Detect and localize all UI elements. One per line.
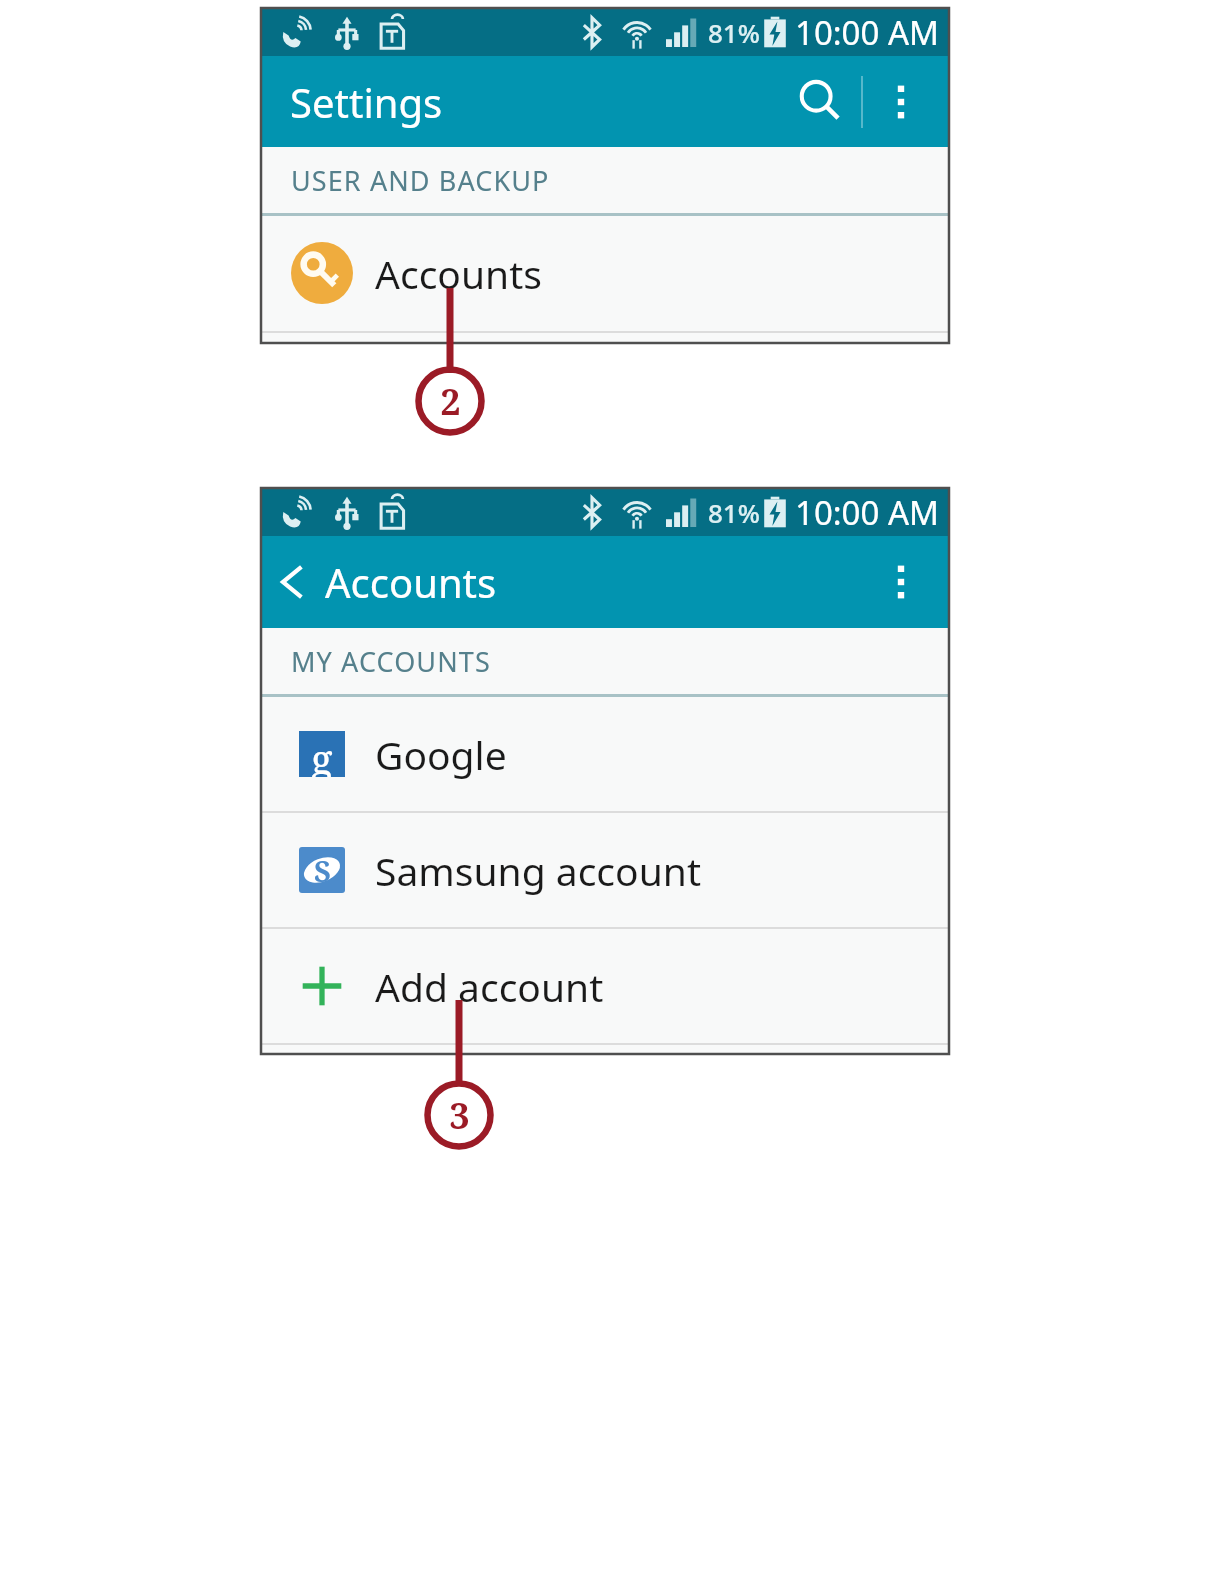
staticText: Google	[375, 728, 507, 781]
staticText: Accounts	[325, 555, 497, 609]
staticText: Samsung account	[375, 844, 701, 897]
button[interactable]: Search	[779, 61, 861, 143]
staticText: S	[314, 851, 331, 890]
staticText: Accounts	[375, 247, 542, 300]
button[interactable]: S	[261, 813, 949, 927]
staticText: USER AND BACKUP	[291, 162, 550, 199]
staticText: Add account	[375, 960, 604, 1013]
staticText: 10:00 AM	[795, 490, 939, 535]
staticText: MY ACCOUNTS	[291, 643, 491, 680]
staticText: 81%	[708, 495, 760, 530]
staticText: 2	[440, 377, 461, 426]
button[interactable]: More options	[863, 544, 939, 620]
staticText: 81%	[708, 15, 760, 50]
staticText: Settings	[290, 75, 443, 129]
button[interactable]: g	[261, 697, 949, 811]
button[interactable]: More options	[863, 64, 939, 140]
button[interactable]: Add account	[261, 929, 949, 1043]
button[interactable]: Back	[261, 536, 325, 628]
staticText: g	[311, 731, 333, 777]
staticText: 3	[449, 1091, 470, 1140]
button[interactable]: Accounts	[261, 216, 949, 330]
staticText: 10:00 AM	[795, 10, 939, 55]
